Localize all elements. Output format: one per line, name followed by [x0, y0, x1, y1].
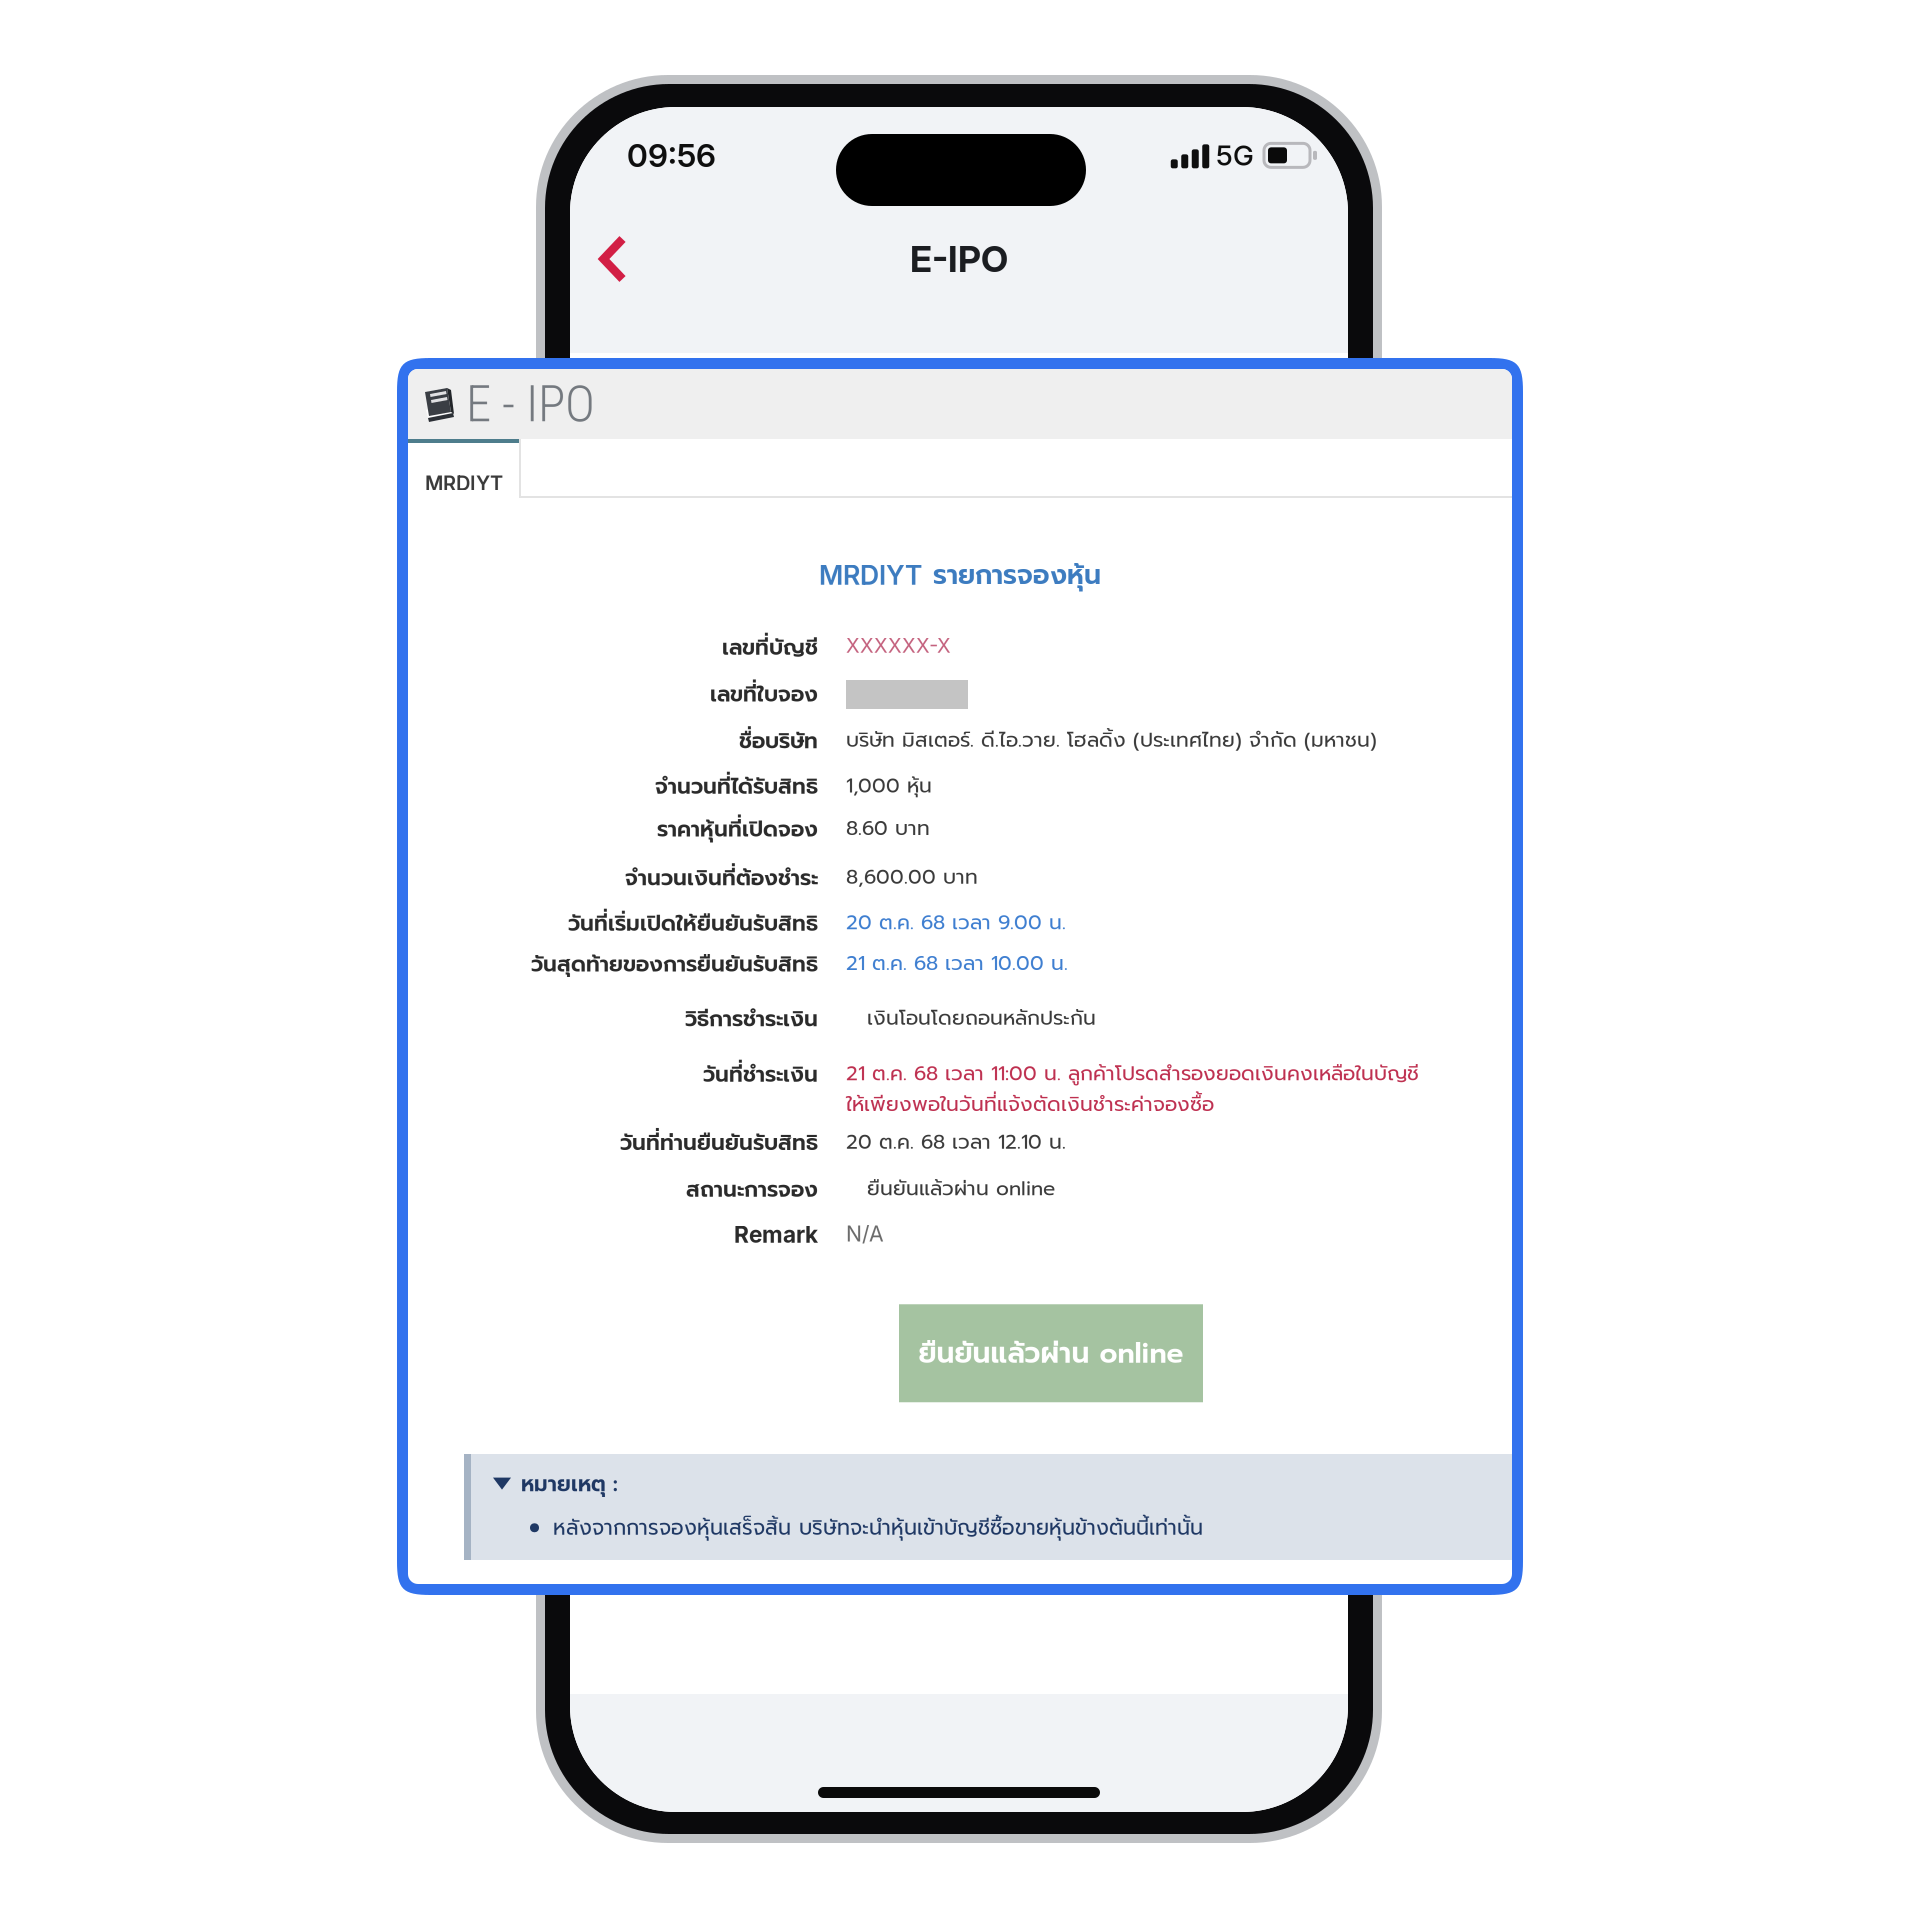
staticText: ยืนยันแล้วผ่าน online [918, 1332, 1183, 1374]
staticText: E-IPO [910, 237, 1008, 281]
staticText: ราคาหุ้นที่เปิดจอง [657, 813, 818, 846]
staticText: MRDIYT [425, 471, 503, 495]
staticText: หมายเหตุ : [521, 1468, 618, 1500]
button[interactable]: MRDIYT [408, 439, 521, 498]
staticText: N/A [846, 1221, 884, 1247]
staticText: จำนวนเงินที่ต้องชำระ [625, 862, 818, 894]
staticText: ชื่อบริษัท [739, 725, 818, 757]
staticText: 8.60 บาท [846, 813, 930, 844]
button[interactable]: Back [583, 222, 643, 296]
staticText: XXXXXX-X [846, 633, 951, 657]
staticText: รายการจองหุ้น [933, 555, 1101, 595]
staticText: เลขที่ใบจอง [710, 678, 818, 711]
staticText: 21 ต.ค. 68 เวลา 10.00 น. [846, 948, 1068, 978]
staticText: วันที่ท่านยืนยันรับสิทธิ [620, 1126, 818, 1159]
staticText: จำนวนที่ได้รับสิทธิ [655, 770, 818, 803]
staticText: ยืนยันแล้วผ่าน online [846, 1173, 1055, 1204]
staticText: E - IPO [466, 374, 595, 434]
staticText: วันที่เริ่มเปิดให้ยืนยันรับสิทธิ [568, 907, 818, 940]
staticText: วันที่ชำระเงิน [703, 1058, 818, 1091]
staticText: 20 ต.ค. 68 เวลา 9.00 น. [846, 907, 1066, 938]
staticText: MRDIYT [819, 559, 922, 591]
staticText: 1,000 หุ้น [846, 770, 932, 801]
staticText: 09:56 [627, 136, 716, 175]
staticText: บริษัท มิสเตอร์. ดี.ไอ.วาย. โฮลดิ้ง (ประ… [846, 725, 1377, 755]
staticText: Remark [734, 1221, 818, 1248]
staticText: สถานะการจอง [686, 1173, 818, 1206]
staticText: 20 ต.ค. 68 เวลา 12.10 น. [846, 1126, 1066, 1157]
staticText: 21 ต.ค. 68 เวลา 11:00 น. ลูกค้าโปรดสำรอง… [846, 1058, 1419, 1120]
staticText: เลขที่บัญชี [722, 631, 818, 664]
staticText: เงินโอนโดยถอนหลักประกัน [846, 1003, 1096, 1033]
staticText: 5G [1216, 138, 1254, 172]
staticText: หลังจากการจองหุ้นเสร็จสิ้น บริษัทจะนำหุ้… [553, 1512, 1203, 1543]
button[interactable]: ยืนยันแล้วผ่าน online [899, 1304, 1203, 1402]
staticText: วิธีการชำระเงิน [685, 1003, 818, 1035]
staticText: 8,600.00 บาท [846, 862, 978, 892]
staticText: วันสุดท้ายของการยืนยันรับสิทธิ [531, 948, 818, 981]
